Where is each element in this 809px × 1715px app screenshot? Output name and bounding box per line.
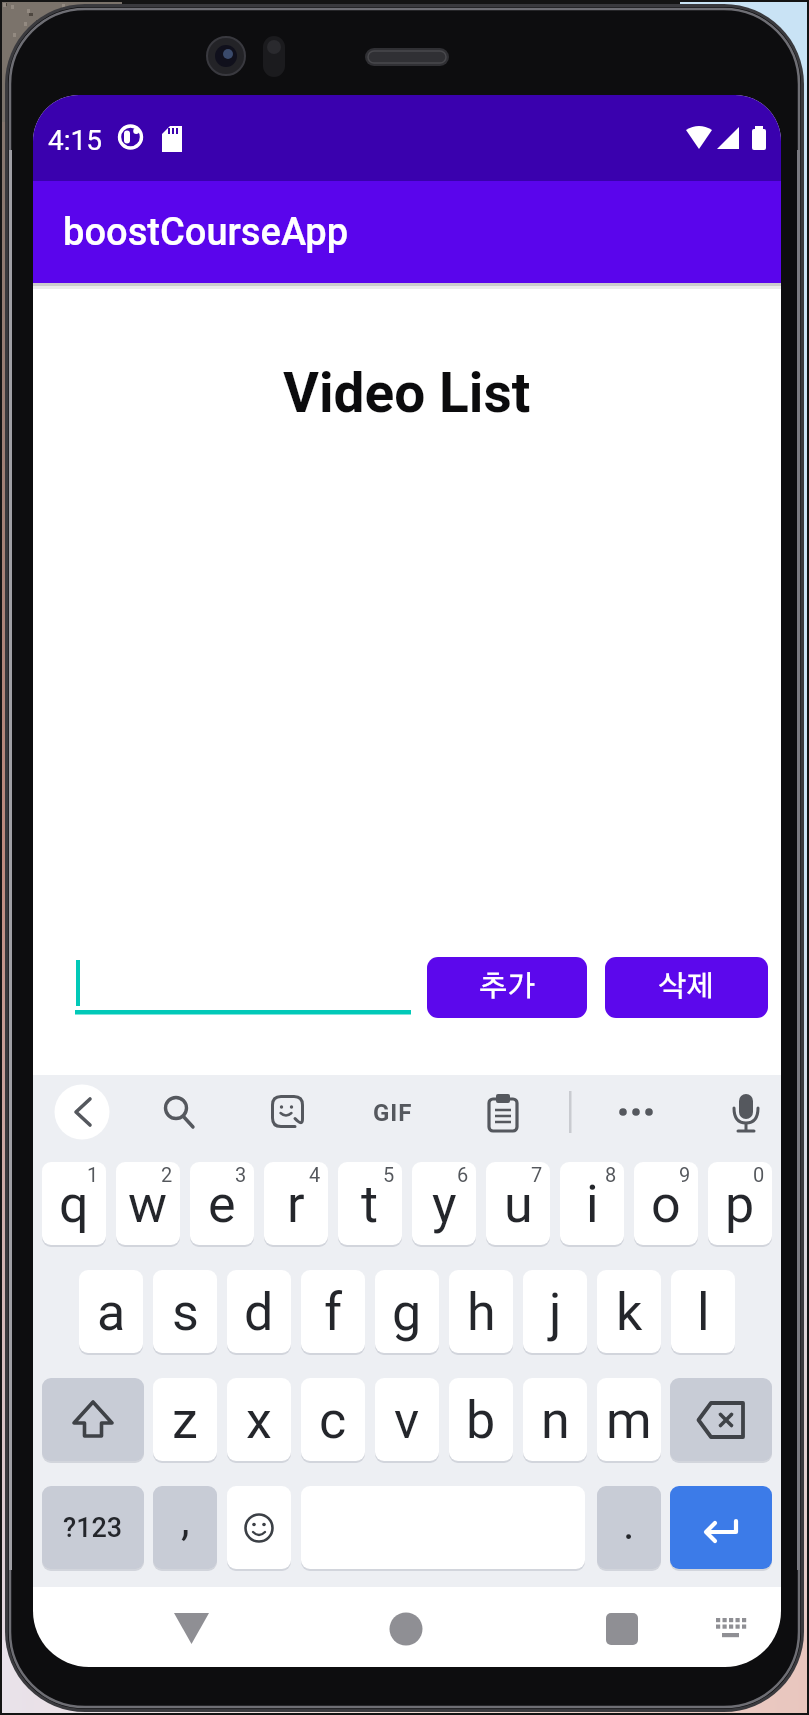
button[interactable]: y	[412, 1162, 476, 1245]
button[interactable]: e	[190, 1162, 254, 1245]
staticText: u	[504, 1174, 533, 1235]
button[interactable]: ,	[153, 1486, 217, 1569]
staticText: z	[172, 1390, 198, 1451]
button[interactable]	[260, 1085, 315, 1140]
staticText: r	[287, 1174, 305, 1235]
staticText: 6	[457, 1163, 469, 1186]
staticText: a	[97, 1282, 126, 1343]
button[interactable]: GIF	[365, 1085, 421, 1140]
staticText: p	[725, 1174, 755, 1235]
staticText: ,	[181, 1494, 190, 1546]
button[interactable]: p	[708, 1162, 772, 1245]
button[interactable]: w	[116, 1162, 180, 1245]
staticText: GIF	[373, 1099, 413, 1127]
button[interactable]	[610, 1085, 665, 1140]
staticText: d	[244, 1282, 274, 1343]
staticText: b	[466, 1390, 496, 1451]
staticText: 삭제	[658, 973, 715, 1002]
button[interactable]: 추가	[427, 957, 587, 1018]
button[interactable]: t	[338, 1162, 402, 1245]
button[interactable]: v	[375, 1378, 439, 1461]
staticText: 4:15	[48, 124, 102, 157]
staticText: 0	[753, 1163, 765, 1186]
button[interactable]	[374, 1595, 438, 1659]
button[interactable]	[75, 950, 411, 1014]
button[interactable]: b	[449, 1378, 513, 1461]
staticText: g	[392, 1282, 422, 1343]
staticText: l	[697, 1282, 710, 1343]
staticText: k	[616, 1282, 643, 1343]
staticText: 3	[235, 1163, 247, 1186]
staticText: n	[541, 1390, 570, 1451]
staticText: 추가	[479, 973, 536, 1002]
staticText: f	[324, 1282, 343, 1343]
button[interactable]: f	[301, 1270, 365, 1353]
button[interactable]: n	[523, 1378, 587, 1461]
button[interactable]: g	[375, 1270, 439, 1353]
staticText: y	[432, 1174, 457, 1235]
button[interactable]	[700, 1598, 760, 1658]
button[interactable]	[475, 1085, 530, 1140]
staticText: m	[606, 1390, 652, 1451]
button[interactable]: i	[560, 1162, 624, 1245]
staticText: o	[651, 1174, 681, 1235]
button[interactable]: ?123	[42, 1486, 144, 1569]
button[interactable]	[227, 1486, 291, 1569]
staticText: w	[128, 1174, 168, 1235]
staticText: h	[467, 1282, 496, 1343]
staticText: Video List	[283, 361, 531, 425]
button[interactable]: z	[153, 1378, 217, 1461]
button[interactable]: x	[227, 1378, 291, 1461]
staticText: q	[59, 1174, 89, 1235]
button[interactable]: u	[486, 1162, 550, 1245]
button[interactable]: d	[227, 1270, 291, 1353]
button[interactable]	[670, 1378, 772, 1461]
staticText: x	[246, 1390, 272, 1451]
button[interactable]: m	[597, 1378, 661, 1461]
staticText: 5	[383, 1163, 395, 1186]
button[interactable]	[155, 1085, 210, 1140]
button[interactable]: .	[597, 1486, 661, 1569]
button[interactable]: o	[634, 1162, 698, 1245]
button[interactable]	[55, 1085, 110, 1140]
staticText: i	[586, 1174, 599, 1235]
button[interactable]: a	[79, 1270, 143, 1353]
staticText: v	[394, 1390, 420, 1451]
button[interactable]	[670, 1486, 772, 1569]
button[interactable]: 삭제	[605, 957, 768, 1018]
button[interactable]: s	[153, 1270, 217, 1353]
button[interactable]: c	[301, 1378, 365, 1461]
staticText: s	[172, 1282, 199, 1343]
staticText: 9	[679, 1163, 691, 1186]
staticText: j	[549, 1282, 562, 1343]
staticText: c	[319, 1390, 347, 1451]
staticText: 2	[161, 1163, 173, 1186]
button[interactable]: k	[597, 1270, 661, 1353]
staticText: boostCourseApp	[63, 210, 349, 255]
button[interactable]: r	[264, 1162, 328, 1245]
staticText: 7	[531, 1163, 543, 1186]
button[interactable]: j	[523, 1270, 587, 1353]
button[interactable]	[160, 1595, 224, 1659]
staticText: ?123	[63, 1512, 123, 1544]
staticText: 8	[605, 1163, 617, 1186]
button[interactable]: q	[42, 1162, 106, 1245]
staticText: t	[361, 1174, 379, 1235]
button[interactable]: l	[671, 1270, 735, 1353]
button[interactable]	[42, 1378, 144, 1461]
button[interactable]: h	[449, 1270, 513, 1353]
staticText: e	[208, 1174, 236, 1235]
button[interactable]	[718, 1085, 773, 1140]
staticText: 1	[87, 1163, 99, 1186]
button[interactable]	[590, 1595, 654, 1659]
staticText: 4	[309, 1163, 321, 1186]
staticText: .	[623, 1498, 635, 1550]
